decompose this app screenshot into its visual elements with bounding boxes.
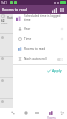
staticText: Time	[24, 37, 32, 41]
staticText: 62	[1, 19, 5, 23]
staticText: Rati	[7, 15, 13, 19]
button[interactable]: Year	[13, 24, 67, 34]
button[interactable]: Tab 1	[20, 109, 32, 119]
staticText: Count	[1, 22, 8, 25]
button[interactable]: Tab 4	[56, 109, 67, 119]
button[interactable]: Apply	[45, 66, 64, 75]
staticText: Scheduled time is logged time	[24, 14, 61, 22]
button[interactable]: Tab 0	[7, 109, 19, 119]
button[interactable]: Rooms to read	[13, 44, 67, 54]
button[interactable]: Statistics	[50, 6, 58, 14]
staticText: Nach autoscroll	[24, 57, 47, 61]
staticText: Rooms	[47, 116, 56, 119]
staticText: Year	[24, 27, 31, 31]
staticText: Apply	[52, 68, 62, 73]
button[interactable]: Rooms	[45, 109, 57, 119]
button[interactable]: Library	[58, 6, 66, 14]
staticText: Rooms to read	[24, 47, 46, 51]
staticText: Rooms to read	[2, 7, 28, 12]
button[interactable]: Tab 2	[31, 109, 43, 119]
button[interactable]: Time	[13, 34, 67, 44]
button[interactable]: Nach autoscroll	[13, 54, 67, 64]
staticText: 9:41	[1, 1, 7, 5]
